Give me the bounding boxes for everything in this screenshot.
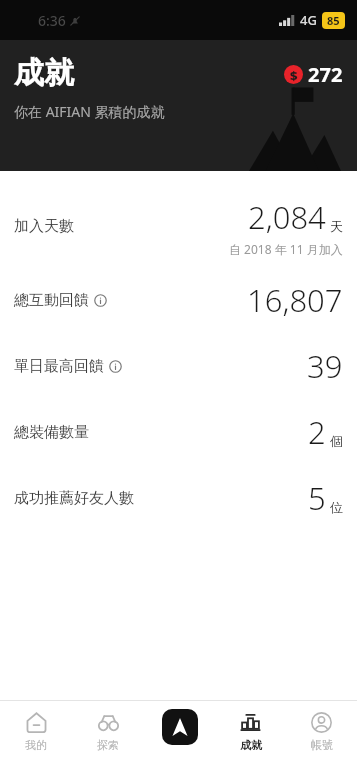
button[interactable]: Navigate <box>144 701 215 775</box>
other: 探索 <box>98 712 119 733</box>
staticText: 探索 <box>97 738 119 752</box>
staticText: 帳號 <box>311 738 333 752</box>
button[interactable]: 我的 <box>0 701 72 775</box>
staticText: 單日最高回饋 <box>14 357 104 376</box>
button[interactable]: 成就 <box>215 701 286 775</box>
button[interactable]: 單日最高回饋 <box>0 333 357 399</box>
staticText: 5 <box>308 477 326 519</box>
other: 我的 <box>26 712 47 733</box>
staticText: 總裝備數量 <box>14 423 89 442</box>
staticText: $ <box>290 66 298 84</box>
staticText: 成功推薦好友人數 <box>14 489 134 508</box>
button[interactable]: 帳號 <box>286 701 357 775</box>
staticText: 你在 AIFIAN 累積的成就 <box>14 102 165 121</box>
staticText: 成就 <box>14 54 74 92</box>
button[interactable]: $ <box>284 61 343 88</box>
staticText: 85 <box>327 13 340 28</box>
other: 成就 <box>240 712 261 733</box>
staticText: 天 <box>330 218 343 234</box>
staticText: 成就 <box>240 738 262 752</box>
staticText: 4G <box>300 11 317 29</box>
staticText: 個 <box>330 433 343 449</box>
button[interactable]: 探索 <box>72 701 144 775</box>
staticText: 39 <box>307 345 343 387</box>
staticText: 2 <box>308 411 326 453</box>
button[interactable]: 成功推薦好友人數 <box>0 465 357 531</box>
staticText: 272 <box>308 61 343 88</box>
staticText: 6:36 <box>38 11 66 30</box>
other: 帳號 <box>311 712 332 733</box>
staticText: 16,807 <box>247 279 343 321</box>
staticText: 我的 <box>25 738 47 752</box>
staticText: 位 <box>330 499 343 515</box>
staticText: 自 2018 年 11 月加入 <box>229 241 343 257</box>
button[interactable]: 加入天數 <box>0 185 357 267</box>
staticText: 2,084 <box>248 196 326 238</box>
button[interactable]: 總裝備數量 <box>0 399 357 465</box>
staticText: 加入天數 <box>14 217 74 236</box>
button[interactable]: 總互動回饋 <box>0 267 357 333</box>
staticText: 總互動回饋 <box>14 291 89 310</box>
